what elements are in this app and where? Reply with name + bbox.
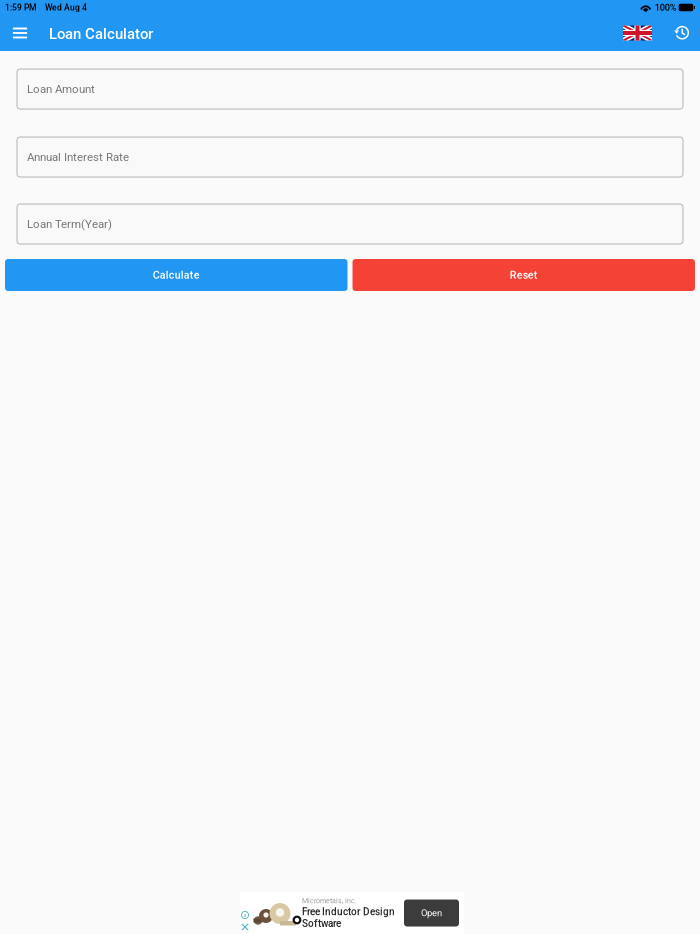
staticText: 1:59 PM xyxy=(5,2,36,12)
button[interactable]: Language xyxy=(616,15,659,51)
staticText: Open xyxy=(421,907,442,918)
button[interactable]: Menu xyxy=(0,15,40,51)
staticText: Loan Calculator xyxy=(49,25,153,43)
staticText: Wed Aug 4 xyxy=(45,2,87,12)
staticText: Free Inductor Design xyxy=(302,906,395,918)
button[interactable]: Open xyxy=(404,899,459,926)
staticText: 100% xyxy=(655,2,677,13)
staticText: Calculate xyxy=(153,269,200,281)
staticText: Micrometals, Inc. xyxy=(302,897,357,905)
staticText: Loan Term(Year) xyxy=(27,217,112,231)
staticText: Loan Amount xyxy=(27,82,95,96)
button[interactable]: Reset xyxy=(352,259,695,291)
staticText: Reset xyxy=(510,269,538,281)
staticText: Annual Interest Rate xyxy=(27,150,129,164)
staticText: Software xyxy=(302,918,341,929)
button[interactable]: History xyxy=(666,15,698,51)
button[interactable]: Calculate xyxy=(5,259,347,291)
